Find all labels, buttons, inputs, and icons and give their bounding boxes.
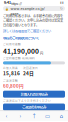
staticText: ›: [19, 112, 21, 120]
staticText: ⌂: [60, 113, 63, 119]
staticText: 🔒: [5, 7, 9, 10]
button[interactable]: Forward: [14, 111, 27, 121]
button[interactable]: お借入れのお申込み: [3, 91, 65, 98]
staticText: 円: [40, 51, 43, 55]
staticText: 現在のご利用状況について: [3, 35, 39, 40]
staticText: 詳しくは各種書類でご確認ください: [3, 29, 51, 33]
button[interactable]: Bookmarks: [41, 111, 54, 121]
staticText: ‹: [6, 112, 8, 120]
staticText: お借入残高: [3, 66, 18, 70]
staticText: ▮▮: [60, 1, 64, 4]
button[interactable]: Share: [27, 111, 41, 121]
staticText: ご返済は以下よりお手続きください: [3, 99, 51, 103]
button[interactable]: ご返済のお申込み: [3, 103, 65, 110]
staticText: ご契約極度額 60,000,000円: [3, 56, 35, 60]
staticText: お借入れのお申込み: [20, 92, 47, 97]
staticText: ↻: [60, 6, 63, 10]
staticText: ご返済のお申込み: [22, 104, 46, 109]
staticText: ご利用可能額: [3, 42, 21, 46]
staticText: 41,190,000: [3, 46, 39, 56]
staticText: ▭: [45, 113, 50, 119]
staticText: https://www.example.co.jp/page: [10, 1, 44, 16]
staticText: ↑: [31, 112, 36, 120]
staticText: ご利用のお客さまは、お手続きの前に内容をご確認ください。お申し込みの受付は翌営業…: [3, 13, 63, 27]
staticText: 9:41: [4, 0, 11, 5]
button[interactable]: Back: [0, 111, 14, 121]
staticText: ご返済金額: [3, 79, 18, 83]
staticText: 次回返済日: [23, 66, 38, 70]
staticText: 15,816: [3, 70, 20, 77]
staticText: 24日: [23, 70, 34, 77]
staticText: 60,800円: [3, 83, 24, 89]
button[interactable]: Tabs: [54, 111, 68, 121]
